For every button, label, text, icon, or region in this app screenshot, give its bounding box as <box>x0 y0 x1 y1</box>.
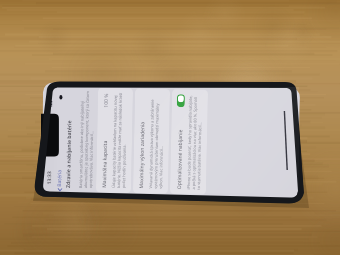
staticText: Vstavaná dynamická správa výkonu a zabrá… <box>148 94 165 189</box>
button[interactable]: Optimalizované nabíjanie <box>177 94 185 107</box>
button[interactable]: Optimalizované nabíjanie <box>170 89 208 195</box>
staticText: 13:33 <box>45 170 51 184</box>
button[interactable]: Batéria <box>56 170 63 192</box>
staticText: Batéria smartfónu, podobne ako iný nabíj… <box>78 90 95 188</box>
staticText: Zdravie a nabíjanie batérie <box>64 120 72 188</box>
staticText: Údaje kapacity batérie vzhľadom na kapac… <box>111 93 128 188</box>
staticText: Optimalizované nabíjanie <box>176 129 184 189</box>
staticText: 100 % <box>103 93 110 108</box>
staticText: Maximálna kapacita <box>101 141 109 188</box>
button[interactable]: Maximálna kapacita <box>96 87 133 193</box>
button[interactable]: Maximálny výkon zariadenia <box>133 88 170 194</box>
staticText: Maximálny výkon zariadenia <box>138 121 146 188</box>
staticText: iPhone sa bude pozerať, kedy ho spravidl… <box>186 94 203 190</box>
staticText: Batéria <box>56 170 63 187</box>
